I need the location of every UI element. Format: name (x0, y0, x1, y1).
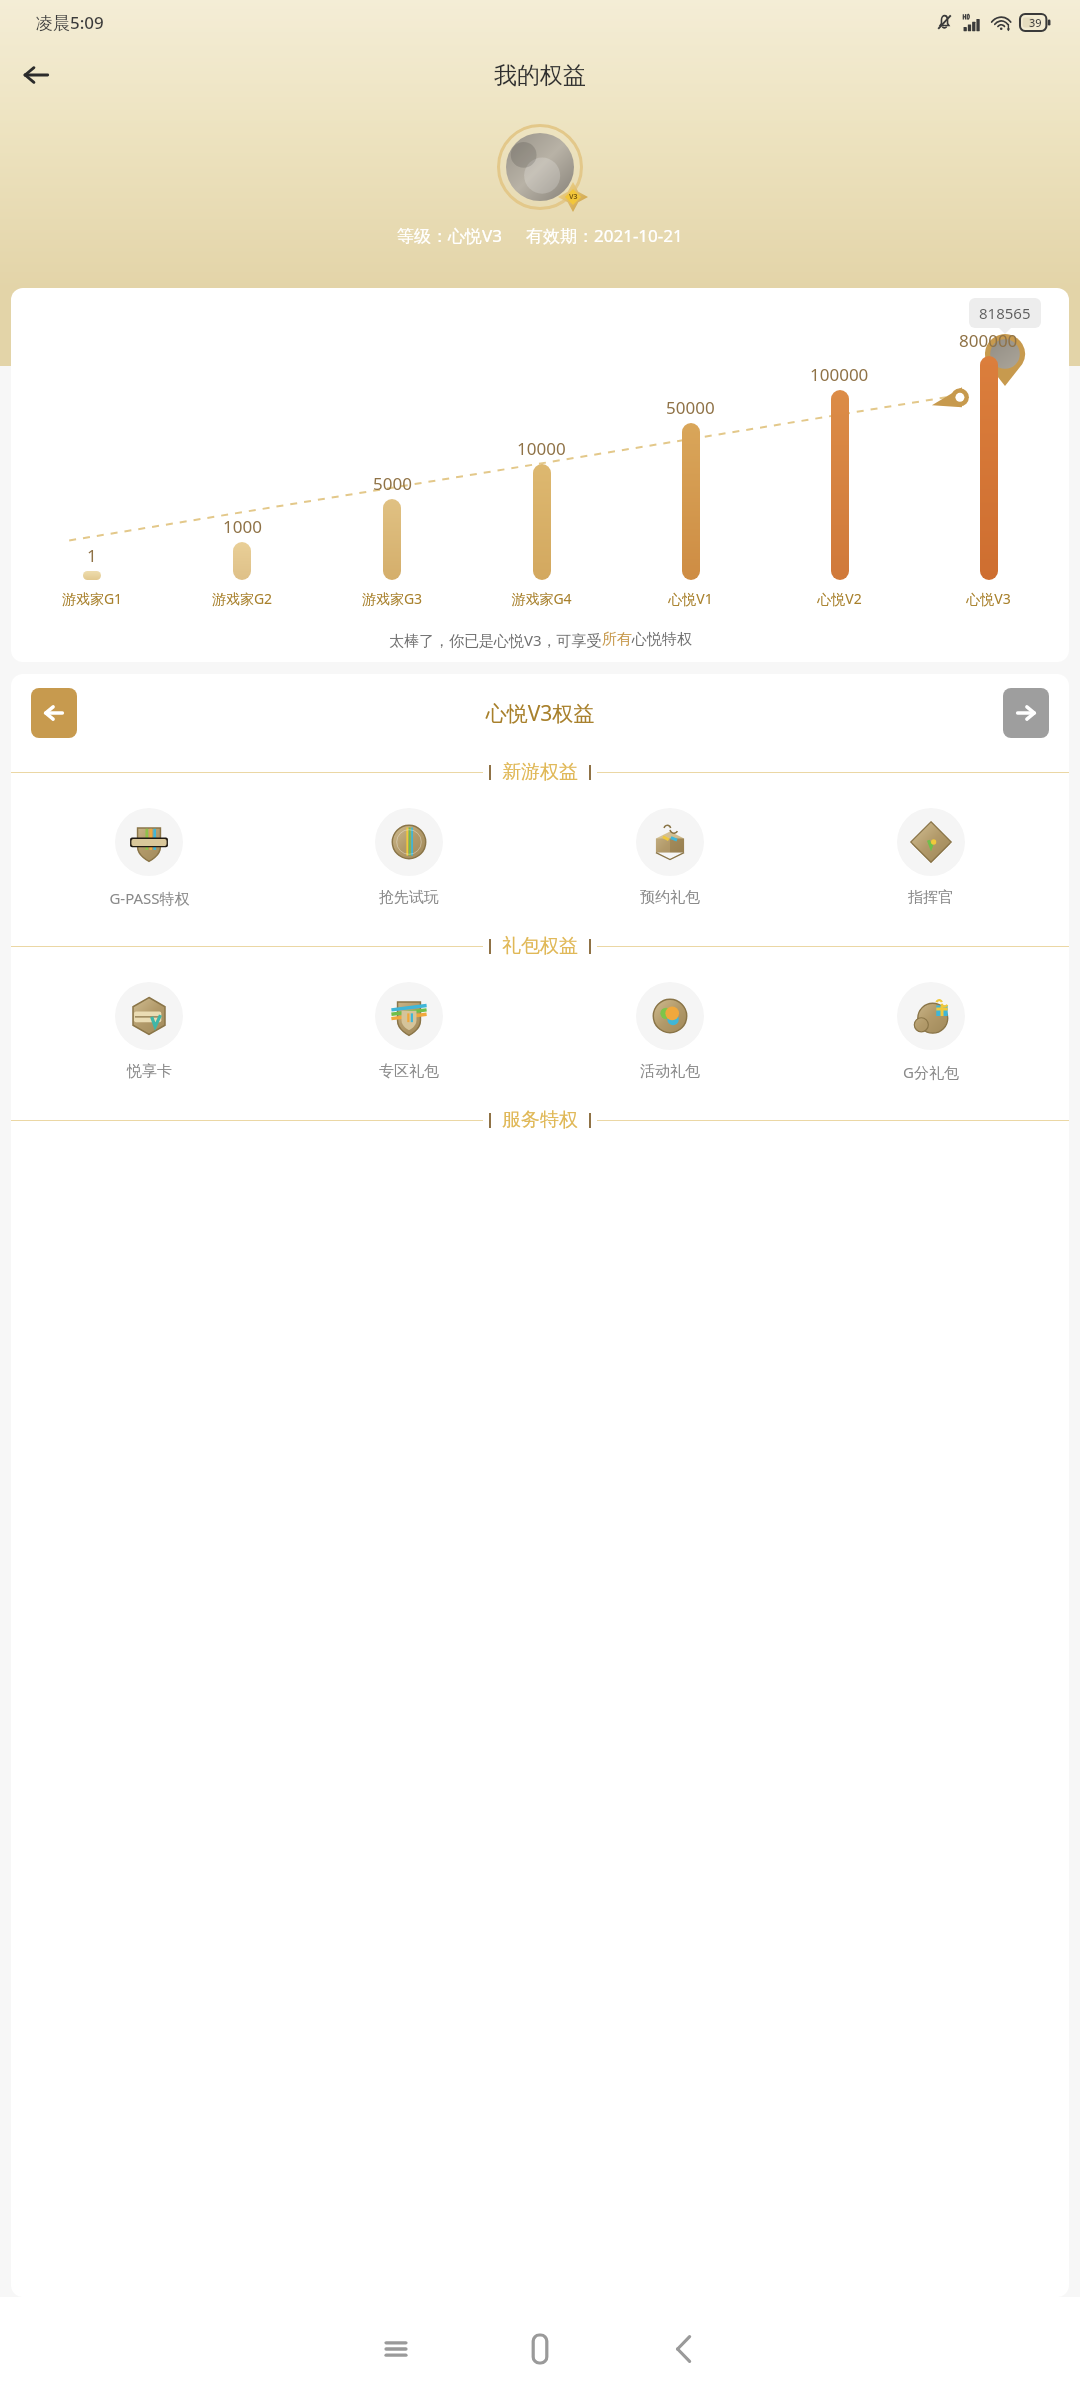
staticText: 800000 (959, 329, 1018, 352)
button[interactable]: Home (492, 2301, 588, 2397)
button[interactable]: 悦享卡 (19, 982, 279, 1081)
button[interactable]: 抢先试玩 (279, 808, 539, 907)
staticText: 100000 (810, 363, 869, 386)
staticText: 心悦V3权益 (77, 699, 1003, 728)
staticText: 游戏家G2 (167, 589, 317, 608)
staticText: 悦享卡 (127, 1062, 172, 1081)
staticText: 抢先试玩 (379, 888, 439, 907)
staticText: 1 (87, 544, 97, 567)
button[interactable]: Back (8, 47, 64, 103)
staticText: 服务特权 (502, 1108, 578, 1132)
staticText: 游戏家G1 (17, 589, 167, 608)
staticText: 心悦V1 (616, 589, 765, 608)
staticText: 39 (1029, 15, 1042, 30)
staticText: 1000 (223, 515, 262, 538)
staticText: 50000 (666, 396, 715, 419)
staticText: V3 (569, 192, 578, 202)
staticText: 太棒了，你已是心悦V3，可享受 (389, 630, 602, 650)
button[interactable]: Recents (348, 2301, 444, 2397)
button[interactable]: 预约礼包 (539, 808, 800, 907)
staticText: 凌晨5:09 (36, 11, 104, 34)
staticText: 活动礼包 (640, 1062, 700, 1081)
staticText: 心悦V3 (914, 589, 1063, 608)
staticText: 10000 (517, 437, 566, 460)
staticText: 心悦V2 (765, 589, 914, 608)
staticText: 新游权益 (502, 760, 578, 784)
button[interactable]: Previous level (31, 688, 77, 738)
button[interactable]: G分礼包 (800, 982, 1061, 1082)
staticText: 所有 (602, 630, 632, 649)
button[interactable]: 活动礼包 (539, 982, 800, 1081)
staticText: 游戏家G4 (467, 589, 616, 608)
staticText: 游戏家G3 (317, 589, 467, 608)
button[interactable]: 专区礼包 (279, 982, 539, 1081)
staticText: G分礼包 (903, 1062, 959, 1082)
staticText: 专区礼包 (379, 1062, 439, 1081)
button[interactable]: 指挥官 (800, 808, 1061, 907)
staticText: 指挥官 (908, 888, 953, 907)
staticText: 5000 (373, 472, 412, 495)
button[interactable]: Next level (1003, 688, 1049, 738)
staticText: 预约礼包 (640, 888, 700, 907)
staticText: 818565 (979, 303, 1031, 323)
button[interactable]: G-PASS特权 (19, 808, 279, 908)
staticText: 有效期：2021-10-21 (526, 224, 683, 247)
staticText: 我的权益 (494, 61, 586, 90)
staticText: 等级：心悦V3 (397, 224, 502, 247)
staticText: 礼包权益 (502, 934, 578, 958)
staticText: G-PASS特权 (109, 888, 190, 908)
staticText: 心悦特权 (632, 630, 692, 649)
button[interactable]: Back (636, 2301, 732, 2397)
